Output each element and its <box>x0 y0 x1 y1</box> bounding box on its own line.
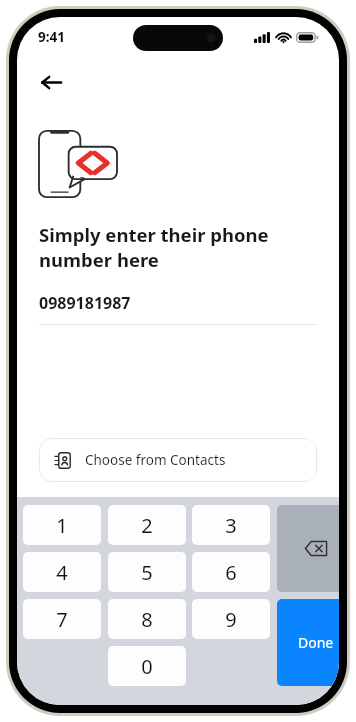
button[interactable]: Choose from Contacts <box>39 438 317 482</box>
button[interactable]: 4 <box>23 552 101 592</box>
staticText: 7 <box>56 606 68 633</box>
staticText: Simply enter their phone number here <box>39 222 269 272</box>
staticText: 9:41 <box>38 28 65 46</box>
button[interactable]: 2 <box>108 505 186 545</box>
button[interactable]: Backspace <box>277 505 339 592</box>
staticText: 8 <box>141 606 153 633</box>
staticText: 5 <box>141 559 153 586</box>
button[interactable]: Done <box>277 599 339 686</box>
button[interactable]: 7 <box>23 599 101 639</box>
staticText: 6 <box>225 559 237 586</box>
staticText: 3 <box>225 512 237 539</box>
button[interactable]: 1 <box>23 505 101 545</box>
staticText: 2 <box>141 512 153 539</box>
button[interactable]: Back <box>31 62 71 102</box>
staticText: 1 <box>56 512 68 539</box>
button[interactable]: 5 <box>108 552 186 592</box>
staticText: 4 <box>56 559 68 586</box>
button[interactable]: 0 <box>108 646 186 686</box>
staticText: 9 <box>225 606 237 633</box>
button[interactable]: 9 <box>192 599 270 639</box>
staticText: Done <box>298 633 334 652</box>
staticText: 0989181987 <box>39 292 131 314</box>
button[interactable]: 8 <box>108 599 186 639</box>
staticText: Choose from Contacts <box>85 451 226 469</box>
button[interactable]: 3 <box>192 505 270 545</box>
staticText: 0 <box>141 653 153 680</box>
button[interactable]: 6 <box>192 552 270 592</box>
